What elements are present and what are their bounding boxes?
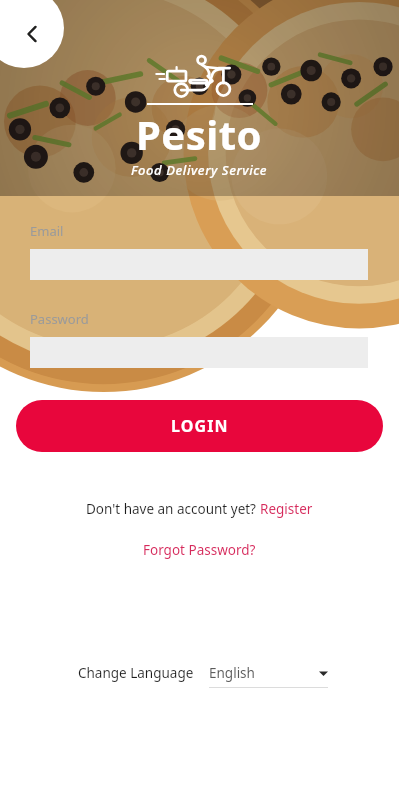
- staticText: Forgot Password?: [143, 541, 256, 559]
- staticText: Password: [30, 310, 89, 328]
- button[interactable]: Register: [260, 500, 313, 518]
- button[interactable]: Forgot Password?: [143, 541, 256, 559]
- staticText: Register: [260, 500, 313, 518]
- button[interactable]: English: [209, 658, 328, 688]
- staticText: Change Language: [78, 664, 194, 682]
- staticText: Food Delivery Service: [131, 161, 268, 179]
- button[interactable]: LOGIN: [16, 400, 383, 452]
- staticText: Pesito: [136, 107, 263, 161]
- staticText: Email: [30, 222, 64, 240]
- button[interactable]: Back: [0, 0, 64, 68]
- staticText: Don't have an account yet?: [86, 500, 260, 518]
- staticText: LOGIN: [171, 415, 229, 437]
- staticText: English: [209, 664, 255, 682]
